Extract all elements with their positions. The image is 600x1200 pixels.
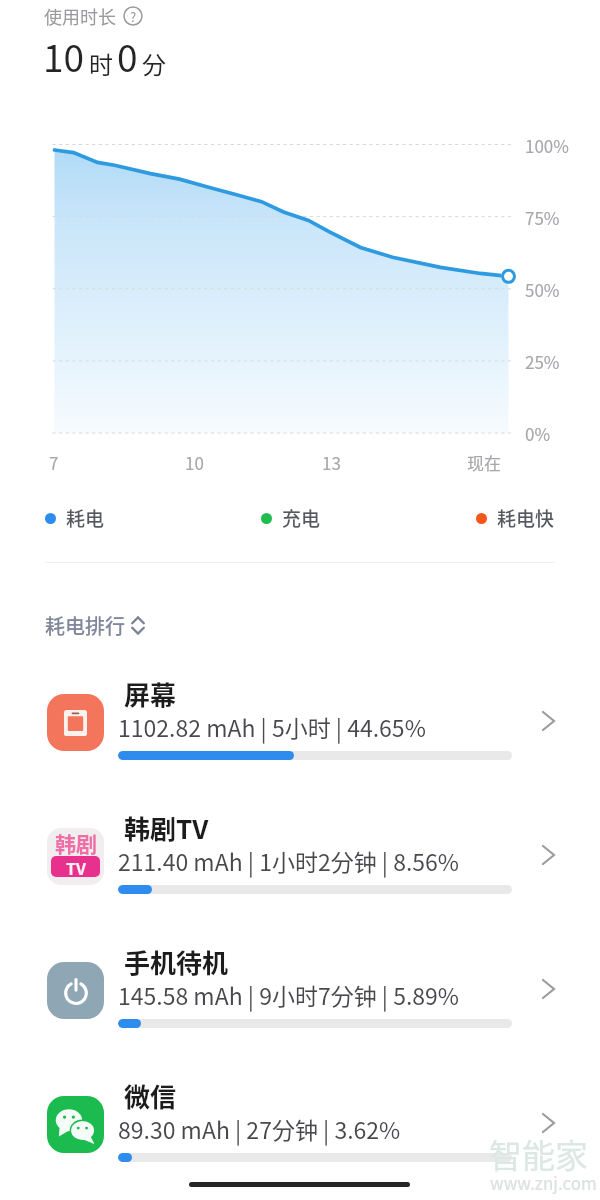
staticText: 使用时长 xyxy=(44,3,116,29)
staticText: 100% xyxy=(525,133,569,158)
staticText: 89.30 mAh | 27分钟 | 3.62% xyxy=(118,1112,401,1145)
staticText: 25% xyxy=(525,349,560,374)
staticText: 屏幕 xyxy=(124,675,177,713)
other: Details xyxy=(541,844,557,866)
staticText: 智能家 xyxy=(489,1130,588,1178)
staticText: 微信 xyxy=(124,1077,177,1115)
button[interactable]: 耗电 xyxy=(43,502,107,534)
button[interactable]: 充电 xyxy=(259,502,323,534)
button[interactable]: 微信 xyxy=(0,1057,600,1191)
other: Details xyxy=(541,1112,557,1134)
staticText: 75% xyxy=(525,205,560,230)
staticText: 211.40 mAh | 1小时2分钟 | 8.56% xyxy=(118,844,460,877)
staticText: 10 xyxy=(43,29,85,83)
staticText: ? xyxy=(130,7,137,26)
other: Details xyxy=(541,978,557,1000)
staticText: 145.58 mAh | 9小时7分钟 | 5.89% xyxy=(118,978,460,1011)
staticText: 0 xyxy=(117,29,138,83)
staticText: 现在 xyxy=(467,450,501,475)
staticText: 耗电排行 xyxy=(45,611,125,640)
button[interactable]: 屏幕 xyxy=(0,655,600,789)
button[interactable]: 使用时长 xyxy=(44,3,143,29)
staticText: 0% xyxy=(525,421,551,446)
staticText: 耗电快 xyxy=(497,504,555,532)
staticText: 7 xyxy=(49,450,59,475)
button[interactable]: 手机待机 xyxy=(0,923,600,1057)
staticText: TV xyxy=(66,856,86,877)
staticText: 韩剧TV xyxy=(124,809,209,847)
staticText: 13 xyxy=(322,450,341,475)
staticText: 10 xyxy=(185,450,204,475)
staticText: 耗电 xyxy=(66,504,105,532)
staticText: 手机待机 xyxy=(124,943,229,981)
button[interactable]: 耗电快 xyxy=(474,502,557,534)
staticText: 1102.82 mAh | 5小时 | 44.65% xyxy=(118,710,426,743)
button[interactable]: 耗电排行 xyxy=(43,609,147,642)
staticText: 充电 xyxy=(282,504,321,532)
staticText: www.znj.com xyxy=(490,1170,597,1195)
staticText: 韩剧 xyxy=(55,828,97,856)
button[interactable]: 韩剧 xyxy=(0,789,600,923)
staticText: 时 xyxy=(89,46,113,81)
staticText: 分 xyxy=(142,46,166,81)
other: Details xyxy=(541,710,557,732)
other: Help xyxy=(123,6,143,26)
staticText: 50% xyxy=(525,277,560,302)
